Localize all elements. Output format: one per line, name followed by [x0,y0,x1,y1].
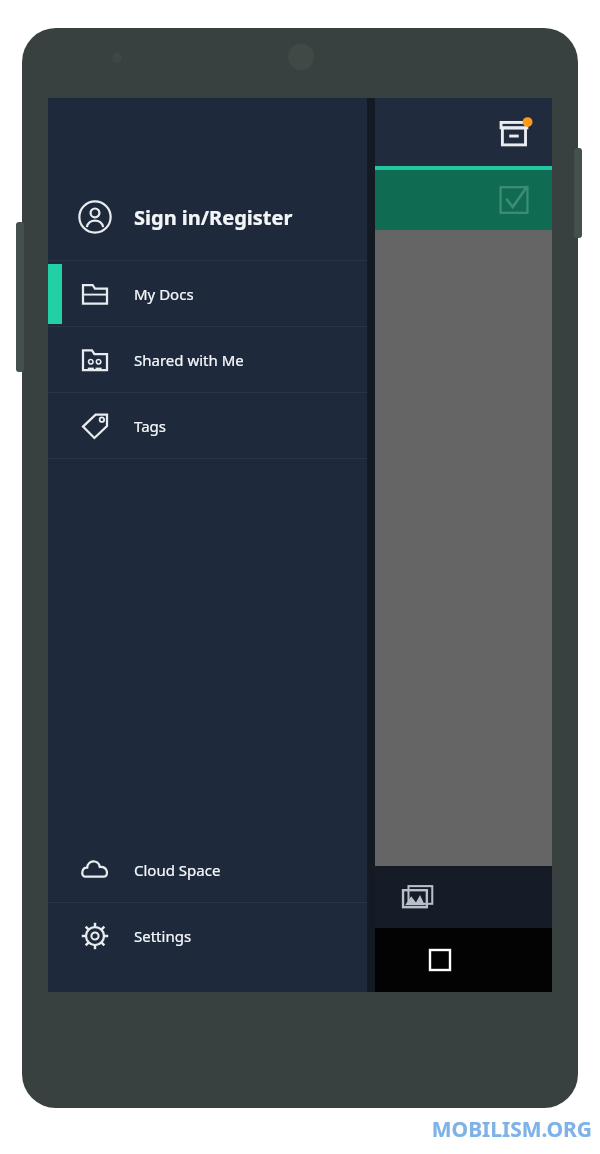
staticText: Cloud Space [134,860,221,880]
button[interactable]: Back [132,932,188,988]
button[interactable]: Share [56,178,100,222]
staticText: My Docs [134,284,194,304]
button[interactable]: Recents [412,932,468,988]
button[interactable]: Shared with Me [48,327,367,392]
staticText: Tags [134,416,166,436]
staticText: Settings [134,926,192,946]
staticText: Sign in/Register [134,204,293,231]
staticText: MOBILISM.ORG [431,1115,592,1144]
button[interactable]: Settings [48,903,367,968]
button[interactable]: Select all [488,174,540,226]
button[interactable]: Archive [490,108,542,160]
button[interactable]: Gallery [392,871,444,923]
button[interactable]: Cloud Space [48,837,367,902]
button[interactable]: Sign in/Register [48,174,367,260]
staticText: Shared with Me [134,350,244,370]
button[interactable]: My Docs [48,261,367,326]
button[interactable]: Tags [48,393,367,458]
